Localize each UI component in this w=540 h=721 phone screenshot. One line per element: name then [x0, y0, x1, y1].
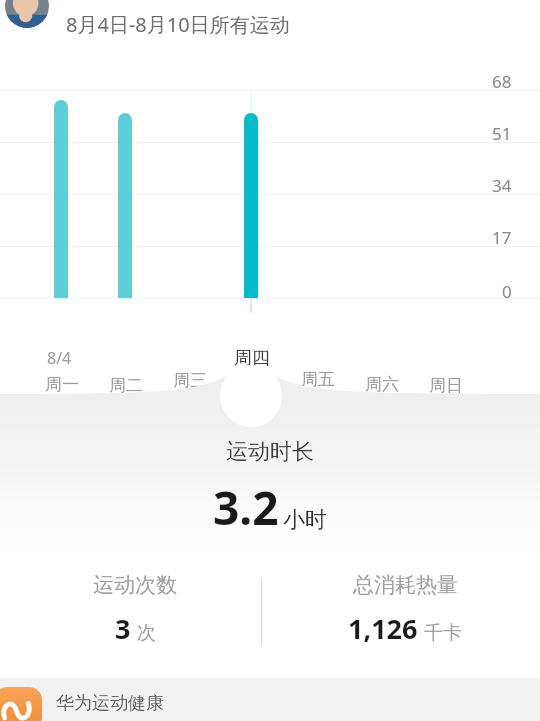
- button[interactable]: 周日: [423, 372, 469, 398]
- button[interactable]: 运动时长: [0, 438, 540, 539]
- other: Huawei Health: [0, 687, 42, 721]
- staticText: 周六: [365, 374, 399, 395]
- staticText: 运动次数: [93, 572, 177, 598]
- staticText: 17: [492, 226, 512, 249]
- staticText: 周一: [45, 374, 79, 395]
- staticText: 周二: [109, 375, 143, 396]
- staticText: 华为运动健康: [56, 692, 164, 715]
- staticText: 运动时长: [226, 438, 314, 466]
- button[interactable]: 周四: [229, 345, 275, 371]
- staticText: 总消耗热量: [353, 572, 458, 598]
- button[interactable]: 周一: [39, 371, 85, 397]
- button[interactable]: 周二: [103, 372, 149, 398]
- button[interactable]: 总消耗热量: [270, 572, 540, 652]
- staticText: 34: [492, 174, 512, 197]
- staticText: 3.2: [213, 476, 279, 539]
- staticText: 千卡: [424, 621, 462, 645]
- staticText: 周四: [234, 347, 270, 370]
- staticText: 周三: [173, 370, 207, 391]
- staticText: 68: [492, 70, 512, 93]
- staticText: 51: [492, 122, 512, 145]
- staticText: 次: [137, 621, 156, 645]
- staticText: 8月4日-8月10日所有运动: [66, 11, 290, 38]
- button[interactable]: 周三: [167, 367, 213, 393]
- staticText: 1,126: [348, 610, 418, 647]
- button[interactable]: 周五: [295, 366, 341, 392]
- staticText: 8/4: [47, 347, 72, 369]
- staticText: 周日: [429, 375, 463, 396]
- staticText: 小时: [283, 506, 327, 534]
- staticText: 周五: [301, 369, 335, 390]
- button[interactable]: Huawei Health: [0, 678, 540, 721]
- staticText: 3: [115, 610, 131, 647]
- staticText: 0: [502, 280, 512, 303]
- button[interactable]: 周六: [359, 371, 405, 397]
- button[interactable]: 运动次数: [0, 572, 270, 652]
- button[interactable]: User avatar: [5, 0, 49, 28]
